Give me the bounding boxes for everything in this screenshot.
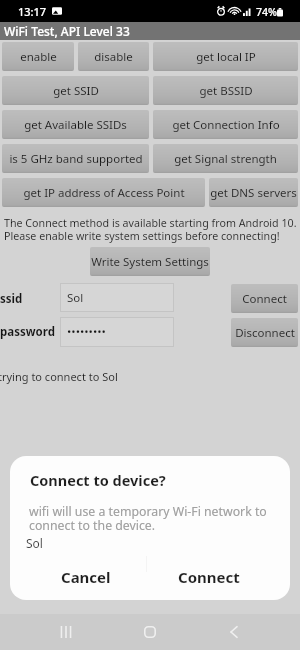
staticText: trying to connect to Sol	[0, 369, 118, 384]
button[interactable]: Cancel	[10, 554, 150, 600]
staticText: Connect to device?	[30, 470, 166, 490]
staticText: Please enable write system settings befo…	[4, 229, 280, 244]
staticText: get Available SSIDs	[24, 117, 127, 133]
staticText: wifi will use a temporary Wi-Fi network …	[29, 503, 267, 520]
staticText: get DNS servers	[210, 185, 297, 201]
staticText: Write System Settings	[91, 254, 209, 270]
button[interactable]: Disconnect	[231, 318, 298, 347]
staticText: ssid	[0, 291, 23, 307]
button[interactable]: get DNS servers	[209, 178, 298, 207]
staticText: Disconnect	[235, 325, 295, 341]
staticText: Cancel	[61, 567, 111, 587]
staticText: get SSID	[53, 83, 99, 99]
staticText: Sol	[26, 535, 43, 551]
button[interactable]: get IP address of Access Point	[2, 178, 205, 207]
button[interactable]: Connect	[231, 284, 298, 313]
staticText: disable	[94, 49, 133, 65]
button[interactable]: get Connection Info	[153, 110, 298, 139]
button[interactable]: enable	[2, 42, 74, 71]
button[interactable]: disable	[78, 42, 149, 71]
button[interactable]: Back	[210, 614, 258, 650]
staticText: is 5 GHz band supported	[9, 151, 143, 167]
button[interactable]: get Available SSIDs	[2, 110, 149, 139]
staticText: get IP address of Access Point	[23, 185, 185, 201]
staticText: get local IP	[196, 49, 256, 65]
staticText: WiFi Test, API Level 33	[4, 23, 130, 39]
button[interactable]: get SSID	[2, 76, 149, 105]
button[interactable]: Home	[126, 614, 174, 650]
staticText: Sol	[67, 290, 84, 306]
staticText: get Signal strength	[174, 151, 277, 167]
staticText: get BSSID	[199, 83, 253, 99]
staticText: enable	[20, 49, 57, 65]
staticText: •••••••••	[67, 324, 106, 340]
staticText: password	[0, 324, 55, 340]
staticText: Connect	[178, 567, 240, 587]
button[interactable]: Write System Settings	[90, 247, 210, 276]
button[interactable]: get BSSID	[153, 76, 298, 105]
staticText: connect to the device.	[29, 517, 156, 534]
button[interactable]: get local IP	[153, 42, 298, 71]
button[interactable]: Recents	[42, 614, 90, 650]
staticText: Connect	[242, 291, 287, 307]
button[interactable]: Connect	[150, 554, 290, 600]
staticText: 74%	[256, 5, 277, 19]
staticText: The Connect method is available starting…	[4, 216, 297, 231]
staticText: get Connection Info	[172, 117, 280, 133]
staticText: 13:17	[18, 4, 47, 19]
button[interactable]: get Signal strength	[153, 144, 298, 173]
button[interactable]: is 5 GHz band supported	[2, 144, 149, 173]
